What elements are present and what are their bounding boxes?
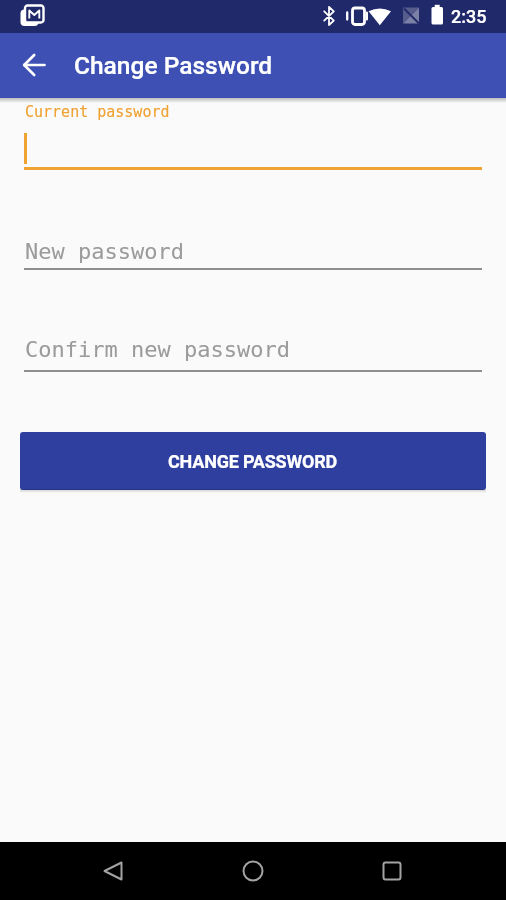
button[interactable]: [90, 847, 138, 895]
staticText: CHANGE PASSWORD: [168, 451, 338, 472]
button[interactable]: [368, 847, 416, 895]
staticText: Confirm new password: [25, 337, 290, 363]
button[interactable]: CHANGE PASSWORD: [20, 432, 486, 490]
staticText: Change Password: [74, 51, 273, 80]
staticText: New password: [25, 239, 184, 265]
staticText: Current password: [25, 103, 170, 120]
button[interactable]: [229, 847, 277, 895]
button[interactable]: [11, 41, 59, 89]
button[interactable]: [24, 228, 482, 270]
staticText: 2:35: [451, 6, 487, 27]
button[interactable]: [24, 329, 482, 372]
button[interactable]: [24, 103, 482, 169]
